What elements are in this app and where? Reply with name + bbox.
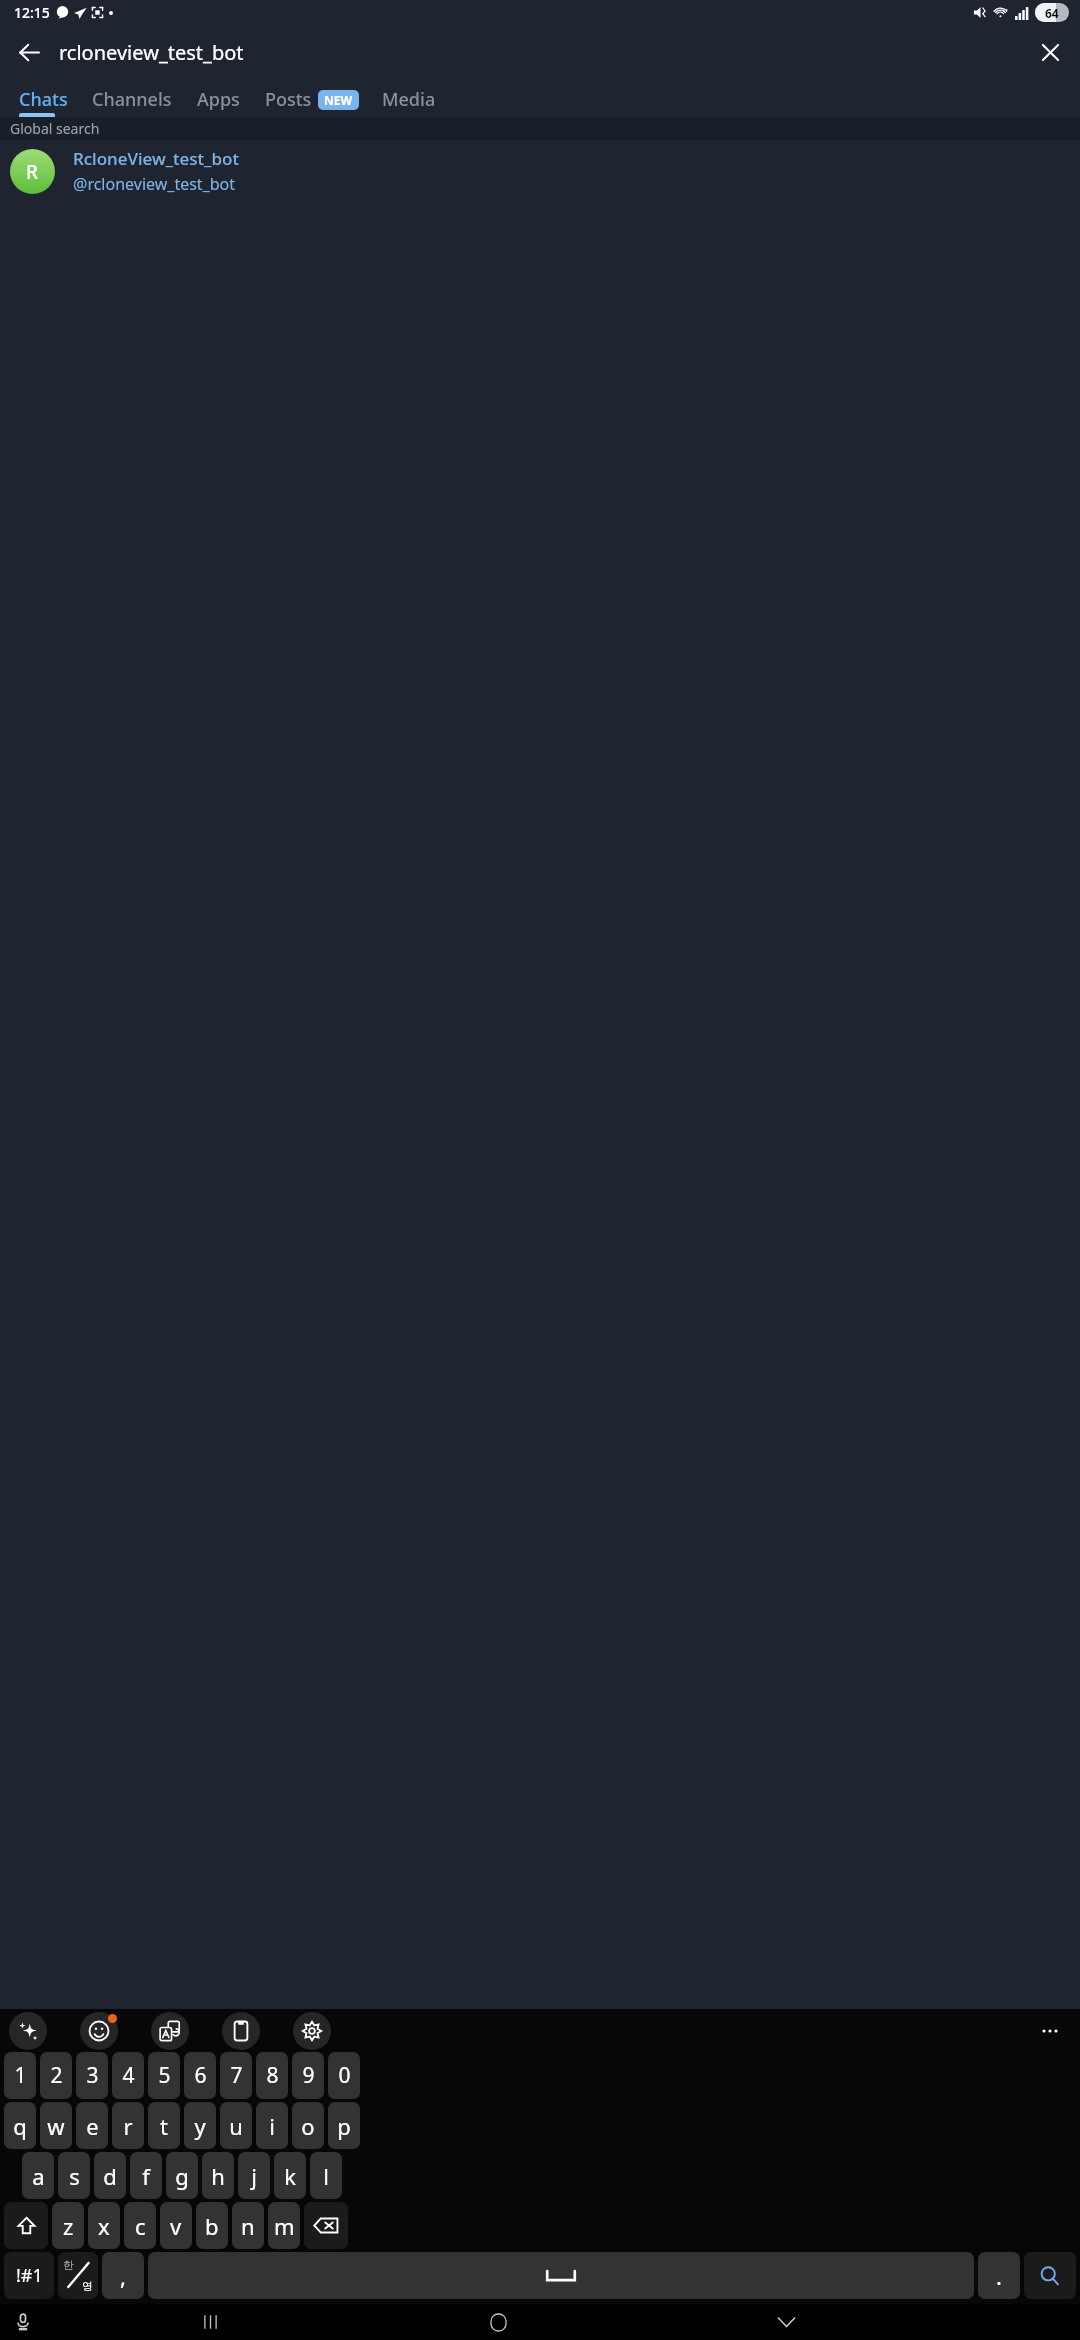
staticText: v xyxy=(170,2211,182,2241)
button[interactable]: i xyxy=(256,2102,288,2149)
staticText: k xyxy=(284,2161,296,2191)
button[interactable]: 4 xyxy=(112,2052,144,2099)
button[interactable]: Clear search xyxy=(1027,29,1073,75)
staticText: x xyxy=(98,2211,110,2241)
staticText: 1 xyxy=(14,2061,27,2090)
button[interactable]: 7 xyxy=(220,2052,252,2099)
staticText: . xyxy=(996,2261,1002,2291)
staticText: 영 xyxy=(82,2279,93,2293)
button[interactable]: Voice input xyxy=(5,2304,41,2340)
button[interactable]: 0 xyxy=(328,2052,360,2099)
button[interactable]: v xyxy=(160,2202,192,2249)
button[interactable]: 8 xyxy=(256,2052,288,2099)
staticText: d xyxy=(103,2161,117,2191)
button[interactable]: b xyxy=(196,2202,228,2249)
staticText: 3 xyxy=(86,2061,99,2090)
staticText: RcloneView_test_bot xyxy=(73,147,239,170)
button[interactable]: n xyxy=(232,2202,264,2249)
staticText: s xyxy=(69,2161,80,2191)
button[interactable]: w xyxy=(40,2102,72,2149)
staticText: g xyxy=(175,2161,189,2191)
staticText: NEW xyxy=(324,92,353,108)
staticText: r xyxy=(123,2111,133,2141)
button[interactable]: l xyxy=(310,2152,342,2199)
button[interactable]: Emoji xyxy=(80,2012,118,2050)
button[interactable]: Hide keyboard xyxy=(763,2304,809,2340)
button[interactable]: Shift xyxy=(4,2202,48,2249)
button[interactable]: 2 xyxy=(40,2052,72,2099)
button[interactable]: t xyxy=(148,2102,180,2149)
staticText: l xyxy=(323,2161,329,2191)
button[interactable]: Backspace xyxy=(304,2202,348,2249)
button[interactable]: Translate xyxy=(151,2012,189,2050)
button[interactable]: e xyxy=(76,2102,108,2149)
button[interactable]: Media xyxy=(382,79,436,117)
button[interactable]: Clipboard xyxy=(222,2012,260,2050)
staticText: o xyxy=(301,2111,315,2141)
staticText: z xyxy=(63,2211,74,2241)
button[interactable]: g xyxy=(166,2152,198,2199)
button[interactable]: r xyxy=(112,2102,144,2149)
staticText: , xyxy=(120,2261,126,2291)
button[interactable]: , xyxy=(102,2252,144,2299)
button[interactable]: c xyxy=(124,2202,156,2249)
button[interactable]: 3 xyxy=(76,2052,108,2099)
staticText: Posts xyxy=(265,87,312,112)
staticText: R xyxy=(26,159,39,185)
button[interactable]: Suggestions xyxy=(9,2012,47,2050)
staticText: p xyxy=(337,2111,351,2141)
staticText: y xyxy=(194,2111,206,2141)
button[interactable]: Posts xyxy=(265,79,359,117)
staticText: n xyxy=(241,2211,255,2241)
button[interactable]: 1 xyxy=(4,2052,36,2099)
button[interactable]: Search xyxy=(1024,2252,1076,2299)
button[interactable]: 6 xyxy=(184,2052,216,2099)
button[interactable]: a xyxy=(22,2152,54,2199)
button[interactable]: k xyxy=(274,2152,306,2199)
button[interactable]: s xyxy=(58,2152,90,2199)
staticText: Global search xyxy=(10,119,100,138)
staticText: Apps xyxy=(197,87,240,112)
button[interactable]: z xyxy=(52,2202,84,2249)
button[interactable]: Apps xyxy=(197,79,240,117)
button[interactable]: o xyxy=(292,2102,324,2149)
button[interactable]: R xyxy=(0,140,1080,202)
staticText: 8 xyxy=(266,2061,279,2090)
staticText: e xyxy=(86,2111,99,2141)
staticText: 한 xyxy=(63,2258,74,2272)
button[interactable]: f xyxy=(130,2152,162,2199)
button[interactable]: . xyxy=(978,2252,1020,2299)
button[interactable]: Switch language xyxy=(58,2252,98,2299)
button[interactable]: !#1 xyxy=(4,2252,54,2299)
button[interactable]: p xyxy=(328,2102,360,2149)
button[interactable]: h xyxy=(202,2152,234,2199)
staticText: Media xyxy=(382,87,436,112)
button[interactable]: 5 xyxy=(148,2052,180,2099)
button[interactable]: Home xyxy=(475,2304,521,2340)
button[interactable]: More options xyxy=(1029,2010,1071,2052)
staticText: m xyxy=(274,2211,295,2241)
button[interactable]: Space xyxy=(148,2252,974,2299)
button[interactable]: Back xyxy=(5,28,53,76)
staticText: f xyxy=(142,2161,150,2191)
staticText: c xyxy=(135,2211,146,2241)
button[interactable]: x xyxy=(88,2202,120,2249)
button[interactable]: j xyxy=(238,2152,270,2199)
staticText: !#1 xyxy=(16,2263,43,2288)
staticText: 64 xyxy=(1045,5,1059,21)
button[interactable]: Chats xyxy=(19,79,68,117)
button[interactable]: Channels xyxy=(92,79,172,117)
button[interactable]: y xyxy=(184,2102,216,2149)
button[interactable]: u xyxy=(220,2102,252,2149)
staticText: Chats xyxy=(19,87,68,112)
staticText: j xyxy=(251,2161,257,2191)
staticText: w xyxy=(47,2111,65,2141)
button[interactable]: q xyxy=(4,2102,36,2149)
button[interactable]: m xyxy=(268,2202,300,2249)
staticText: h xyxy=(211,2161,225,2191)
button[interactable]: Recents xyxy=(187,2304,233,2340)
button[interactable]: Keyboard settings xyxy=(293,2012,331,2050)
staticText: t xyxy=(160,2111,168,2141)
button[interactable]: d xyxy=(94,2152,126,2199)
button[interactable]: 9 xyxy=(292,2052,324,2099)
